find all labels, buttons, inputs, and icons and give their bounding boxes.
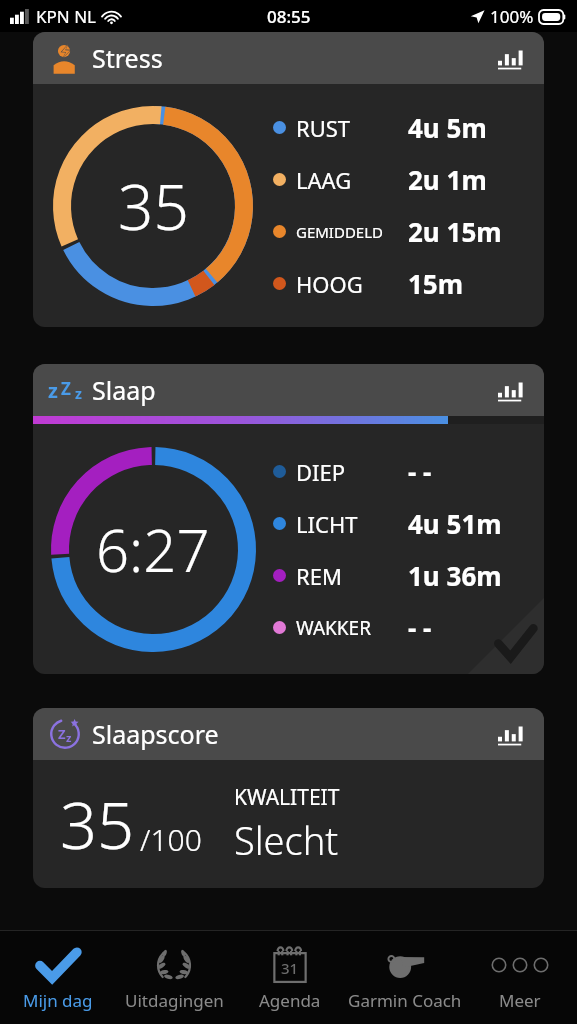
staticText: RUST (296, 113, 351, 143)
staticText: 15m (408, 266, 464, 301)
button[interactable]: Stress (33, 32, 544, 84)
staticText: REM (296, 561, 342, 591)
staticText: 1u 36m (408, 558, 502, 593)
staticText: 100% (490, 5, 534, 28)
button[interactable]: Meer (462, 931, 577, 1024)
staticText: DIEP (296, 457, 346, 487)
staticText: Meer (499, 989, 541, 1012)
staticText: Garmin Coach (348, 989, 462, 1012)
staticText: Slaap (92, 373, 156, 407)
staticText: z (66, 730, 72, 745)
staticText: HOOG (296, 269, 363, 299)
staticText: - - (408, 454, 432, 489)
staticText: Uitdagingen (125, 989, 224, 1012)
staticText: - - (408, 610, 432, 645)
staticText: Slaapscore (92, 717, 219, 751)
staticText: 4u 51m (408, 506, 502, 541)
button[interactable]: 31 (232, 931, 347, 1024)
staticText: 35 (60, 780, 135, 869)
staticText: /100 (140, 819, 202, 860)
button[interactable]: z (33, 364, 544, 416)
staticText: LAAG (296, 165, 352, 195)
staticText: 2u 15m (408, 214, 502, 249)
button[interactable]: Mijn dag (0, 931, 116, 1024)
staticText: GEMIDDELD (296, 222, 384, 242)
staticText: 4u 5m (408, 110, 487, 145)
button[interactable]: View chart (493, 41, 527, 75)
staticText: z (75, 384, 82, 403)
staticText: KWALITEIT (234, 783, 340, 812)
staticText: Mijn dag (23, 989, 93, 1012)
staticText: 08:55 (267, 5, 311, 28)
staticText: WAKKER (296, 615, 371, 641)
staticText: 31 (281, 958, 299, 978)
staticText: KPN NL (36, 5, 96, 28)
staticText: Stress (92, 41, 163, 75)
button[interactable]: View chart (493, 717, 527, 751)
button[interactable]: Garmin Coach (347, 931, 462, 1024)
button[interactable]: Uitdagingen (116, 931, 232, 1024)
button[interactable]: Stress (33, 32, 544, 327)
staticText: 35 (118, 164, 189, 248)
staticText: 6:27 (96, 510, 210, 589)
staticText: Z (61, 377, 71, 400)
staticText: z (48, 377, 58, 403)
button[interactable]: View chart (493, 373, 527, 407)
button[interactable]: z (33, 364, 544, 674)
button[interactable]: Z (33, 708, 544, 888)
staticText: LICHT (296, 509, 358, 539)
staticText: 2u 1m (408, 162, 487, 197)
button[interactable]: Z (33, 708, 544, 760)
staticText: Agenda (259, 989, 321, 1012)
staticText: Slecht (234, 814, 339, 866)
staticText: Z (58, 725, 66, 743)
